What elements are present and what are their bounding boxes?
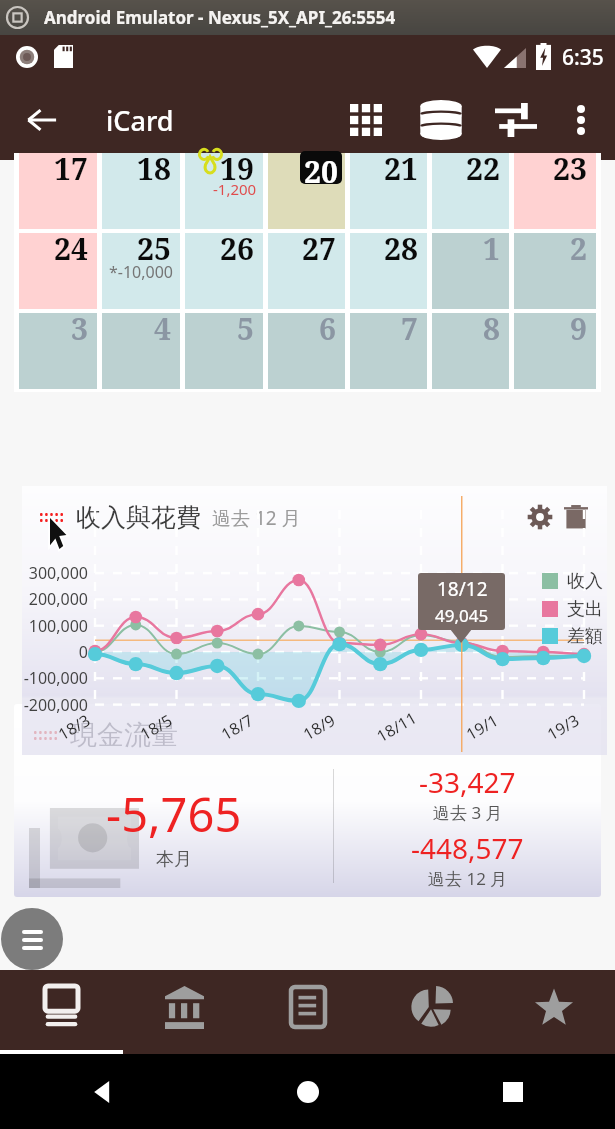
staticText: 現金流量 [70, 718, 178, 752]
staticText: -5,765 [106, 782, 242, 846]
button[interactable]: 6 [268, 313, 345, 389]
staticText: -100,000 [23, 667, 88, 689]
staticText: 支出 [567, 598, 603, 620]
staticText: 18/7 [217, 709, 257, 745]
button[interactable]: 23 [514, 153, 596, 229]
staticText: -448,577 [411, 829, 524, 867]
staticText: 18/3 [54, 709, 94, 745]
staticText: 6:35 [562, 43, 604, 72]
button[interactable]: 4 [102, 313, 180, 389]
button[interactable]: 7 [350, 313, 427, 389]
staticText: 9 [570, 308, 587, 349]
button[interactable]: Favorites [492, 970, 615, 1054]
staticText: -200,000 [23, 694, 88, 716]
staticText: 過去 12 月 [428, 867, 508, 890]
button[interactable]: 現金流量 [34, 718, 178, 752]
button[interactable]: 5 [185, 313, 263, 389]
staticText: 收入與花費 [76, 502, 201, 533]
button[interactable]: 9 [514, 313, 596, 389]
button[interactable]: Home [205, 1054, 410, 1129]
staticText: *-10,000 [109, 261, 174, 283]
staticText: 22 [466, 148, 500, 189]
button[interactable]: Menu [1, 908, 63, 970]
staticText: 200,000 [28, 588, 88, 610]
staticText: 6 [319, 308, 336, 349]
button[interactable]: Settings [519, 496, 561, 538]
staticText: -33,427 [419, 763, 516, 801]
staticText: 收入 [567, 570, 603, 592]
button[interactable]: 21 [350, 153, 427, 229]
staticText: 100,000 [28, 615, 88, 637]
button[interactable]: Database [415, 94, 467, 146]
staticText: iCard [106, 102, 174, 139]
button[interactable]: Dashboard [0, 970, 123, 1054]
staticText: 18/11 [373, 706, 421, 747]
button[interactable]: 25 [102, 233, 180, 309]
staticText: -1,200 [213, 179, 257, 199]
button[interactable]: 8 [432, 313, 509, 389]
button[interactable]: Records [246, 970, 369, 1054]
button[interactable]: 26 [185, 233, 263, 309]
staticText: 18/12 [437, 576, 488, 602]
staticText: 28 [384, 228, 418, 269]
button[interactable]: Accounts [123, 970, 246, 1054]
staticText: 1 [483, 228, 500, 269]
staticText: 差額 [567, 625, 603, 647]
staticText: 4 [154, 308, 171, 349]
staticText: 過去 12 月 [212, 505, 301, 531]
staticText: 27 [302, 228, 336, 269]
staticText: 18/5 [136, 709, 176, 745]
button[interactable]: 3 [19, 313, 97, 389]
button[interactable]: Recents [410, 1054, 615, 1129]
staticText: Android Emulator - Nexus_5X_API_26:5554 [44, 6, 396, 29]
button[interactable]: Back [16, 94, 68, 146]
button[interactable]: Delete [555, 496, 597, 538]
button[interactable]: 28 [350, 233, 427, 309]
staticText: 49,045 [435, 604, 489, 627]
staticText: 20 [304, 151, 338, 184]
button[interactable]: 24 [19, 233, 97, 309]
button[interactable]: Reports [369, 970, 492, 1054]
button[interactable]: 收入與花費 [40, 502, 301, 533]
staticText: 24 [54, 228, 88, 269]
button[interactable]: Filter [490, 94, 542, 146]
staticText: 本月 [156, 848, 192, 871]
staticText: 8 [483, 308, 500, 349]
staticText: 3 [71, 308, 88, 349]
staticText: 19/3 [543, 709, 583, 745]
staticText: 23 [553, 148, 587, 189]
staticText: 17 [54, 148, 88, 189]
button[interactable]: 27 [268, 233, 345, 309]
staticText: 18/9 [299, 709, 339, 745]
staticText: 5 [237, 308, 254, 349]
button[interactable]: Back [0, 1054, 205, 1129]
button[interactable]: 1 [432, 233, 509, 309]
staticText: 7 [401, 308, 418, 349]
button[interactable]: More options [557, 96, 605, 144]
button[interactable]: 22 [432, 153, 509, 229]
staticText: 25 [137, 228, 171, 269]
button[interactable]: Grid view [340, 94, 392, 146]
staticText: 0 [78, 641, 88, 663]
button[interactable]: 19 [185, 153, 263, 229]
staticText: 19 [220, 148, 254, 189]
button[interactable]: 17 [19, 153, 97, 229]
staticText: 300,000 [28, 562, 88, 584]
staticText: 21 [384, 148, 418, 189]
staticText: 18 [137, 148, 171, 189]
staticText: 19/1 [462, 709, 502, 745]
button[interactable]: 2 [514, 233, 596, 309]
staticText: 26 [220, 228, 254, 269]
button[interactable]: 20 [268, 153, 345, 229]
button[interactable]: 18 [102, 153, 180, 229]
staticText: 2 [570, 228, 587, 269]
staticText: 過去 3 月 [433, 801, 503, 824]
